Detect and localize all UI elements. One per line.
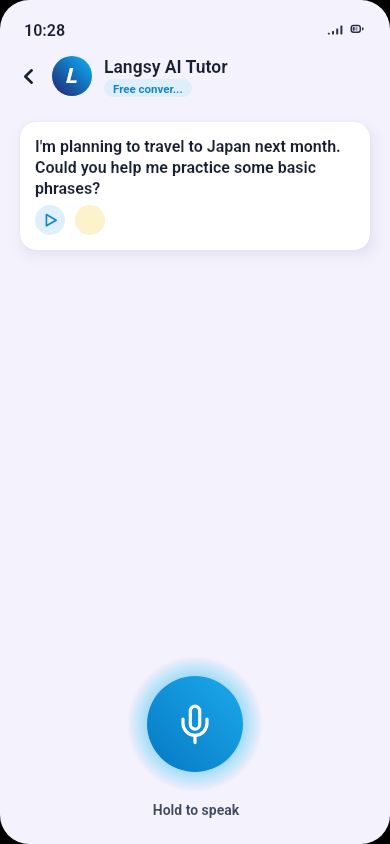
staticText: Langsy AI Tutor [104,57,228,78]
button[interactable]: Back [13,61,43,91]
staticText: Free conver... [113,82,183,95]
button[interactable]: Translate [75,205,105,235]
staticText: L [65,64,77,89]
button[interactable]: Tutor avatar [52,56,92,96]
staticText: 10:28 [24,21,66,40]
button[interactable]: Hold to speak [147,676,243,772]
button[interactable]: Play audio [35,205,65,235]
button[interactable]: Free conver... [104,79,192,97]
staticText: Hold to speak [1,802,390,818]
staticText: I'm planning to travel to Japan next mon… [35,137,353,198]
